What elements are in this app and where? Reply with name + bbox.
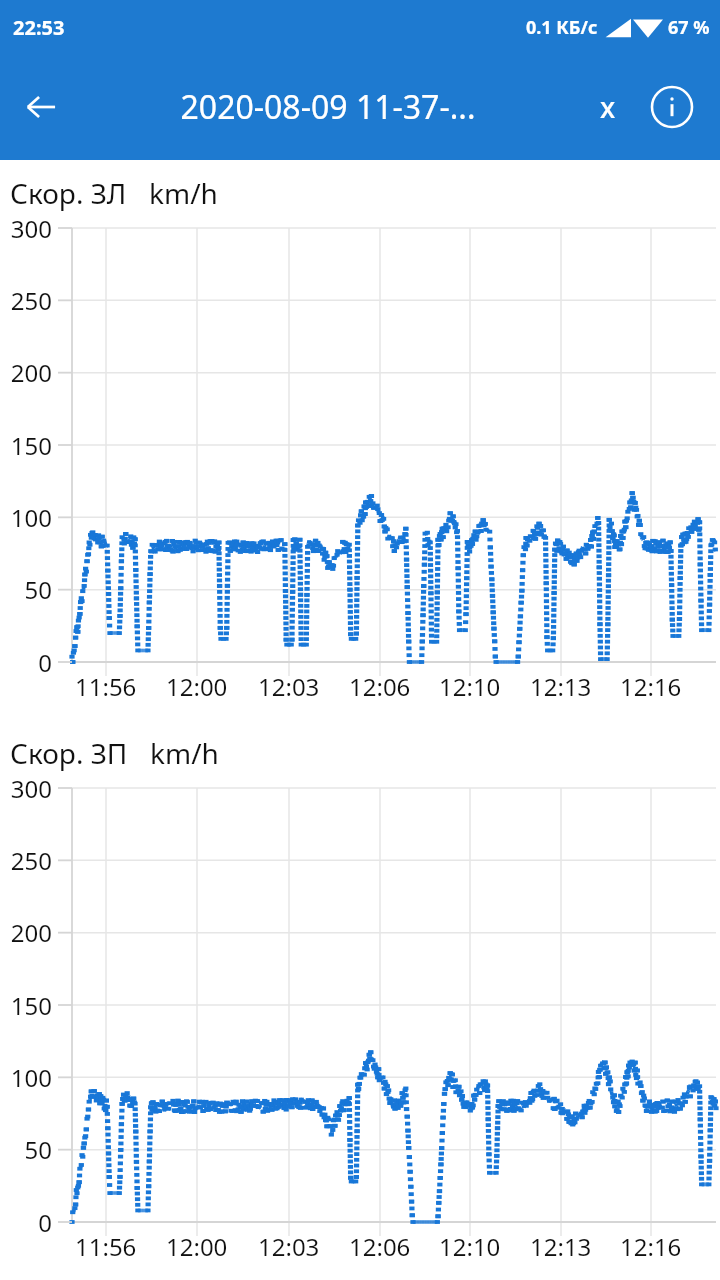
staticText: 50 (24, 573, 52, 606)
staticText: 12:06 (349, 1230, 411, 1263)
staticText: 12:16 (620, 670, 682, 703)
staticText: 0 (38, 646, 52, 679)
staticText: Скор. ЗЛ (10, 174, 127, 212)
staticText: 0.1 КБ/с (526, 15, 598, 40)
staticText: 22:53 (13, 14, 65, 41)
button[interactable]: x (580, 79, 636, 135)
staticText: 300 (10, 772, 52, 805)
staticText: 2020-08-09 11-37-... (76, 85, 580, 129)
staticText: 12:03 (258, 670, 320, 703)
staticText: 100 (10, 501, 52, 534)
staticText: 12:00 (166, 1230, 228, 1263)
staticText: 12:00 (166, 670, 228, 703)
staticText: 12:16 (620, 1230, 682, 1263)
staticText: km/h (150, 734, 219, 772)
staticText: 250 (10, 844, 52, 877)
staticText: 0 (38, 1206, 52, 1239)
button[interactable]: Back (12, 78, 70, 136)
staticText: 12:13 (530, 1230, 592, 1263)
staticText: 200 (10, 356, 52, 389)
staticText: 150 (10, 989, 52, 1022)
staticText: 250 (10, 284, 52, 317)
staticText: Скор. ЗП (10, 734, 128, 772)
staticText: 300 (10, 212, 52, 245)
staticText: 11:56 (75, 670, 137, 703)
staticText: 12:06 (349, 670, 411, 703)
staticText: km/h (149, 174, 218, 212)
staticText: 12:10 (439, 1230, 501, 1263)
staticText: x (600, 88, 616, 126)
staticText: 150 (10, 429, 52, 462)
staticText: 12:13 (530, 670, 592, 703)
staticText: 100 (10, 1061, 52, 1094)
staticText: 11:56 (75, 1230, 137, 1263)
staticText: 67 % (668, 15, 710, 40)
staticText: 50 (24, 1133, 52, 1166)
staticText: 12:10 (439, 670, 501, 703)
button[interactable]: Info (646, 81, 698, 133)
staticText: 12:03 (258, 1230, 320, 1263)
staticText: 200 (10, 916, 52, 949)
